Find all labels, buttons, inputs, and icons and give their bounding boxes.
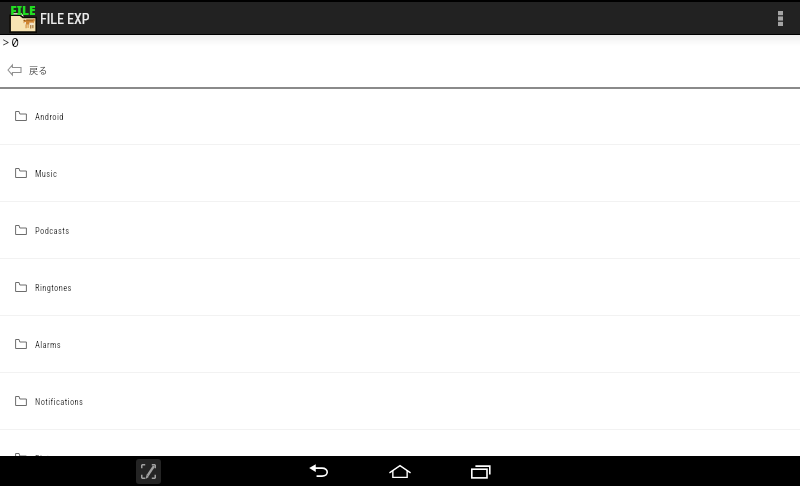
staticText: > 0 — [2, 33, 16, 51]
button[interactable]: Pictures — [0, 430, 800, 486]
button[interactable]: Recents — [466, 459, 496, 485]
button[interactable]: Music — [0, 145, 800, 201]
staticText: FILE — [8, 2, 38, 18]
staticText: 戻る — [29, 63, 48, 76]
button[interactable]: Android — [0, 88, 800, 144]
button[interactable]: Ringtones — [0, 259, 800, 315]
staticText: Music — [35, 169, 58, 179]
button[interactable]: 戻る — [0, 54, 800, 87]
staticText: Notifications — [35, 397, 84, 407]
button[interactable]: Alarms — [0, 316, 800, 372]
staticText: Podcasts — [35, 226, 70, 236]
button[interactable]: Screenshot edit — [136, 459, 161, 484]
staticText: Android — [35, 112, 64, 122]
staticText: Ringtones — [35, 283, 72, 293]
staticText: FILE EXP — [40, 11, 90, 27]
button[interactable]: Back — [304, 457, 334, 483]
button[interactable]: Home — [385, 458, 415, 484]
button[interactable]: Notifications — [0, 373, 800, 429]
staticText: Pictures — [35, 454, 66, 464]
staticText: Alarms — [35, 340, 62, 350]
button[interactable]: More options — [764, 2, 800, 34]
button[interactable]: Podcasts — [0, 202, 800, 258]
